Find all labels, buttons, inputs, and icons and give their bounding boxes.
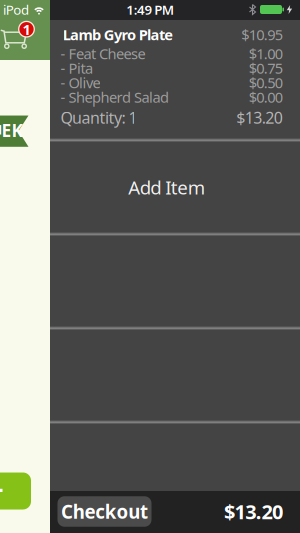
- staticText: - Pita: [60, 58, 93, 78]
- staticText: Add Item: [128, 175, 205, 200]
- staticText: $0.75: [249, 58, 283, 78]
- staticText: 1: [22, 19, 30, 39]
- staticText: 1:49 PM: [126, 1, 174, 18]
- staticText: $13.20: [224, 498, 283, 525]
- button[interactable]: Cart: [0, 20, 40, 56]
- staticText: EK: [1, 119, 23, 142]
- button[interactable]: Checkout: [57, 496, 151, 527]
- staticText: $1.00: [249, 44, 283, 63]
- button[interactable]: Add: [0, 472, 31, 509]
- staticText: Lamb Gyro Plate: [63, 25, 173, 44]
- staticText: $0.50: [249, 73, 283, 92]
- button[interactable]: Lamb Gyro Plate: [50, 20, 300, 139]
- staticText: - Shepherd Salad: [60, 87, 169, 107]
- staticText: - Feat Cheese: [60, 44, 145, 63]
- staticText: $13.20: [236, 107, 283, 128]
- staticText: Checkout: [61, 499, 148, 524]
- staticText: - Olive: [60, 73, 100, 92]
- staticText: $0.00: [249, 87, 283, 107]
- staticText: iPod: [3, 1, 29, 18]
- button[interactable]: Add Item: [50, 141, 300, 233]
- staticText: $10.95: [241, 25, 283, 44]
- staticText: Quantity: 1: [60, 107, 137, 128]
